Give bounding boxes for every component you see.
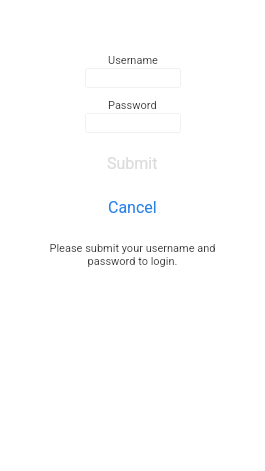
button[interactable]: Username input <box>85 68 181 88</box>
button[interactable]: Password input <box>85 113 181 133</box>
staticText: Password <box>108 99 157 112</box>
staticText: Username <box>108 54 158 67</box>
staticText: Cancel <box>108 198 157 217</box>
staticText: Please submit your username and password… <box>45 242 220 268</box>
button[interactable]: Cancel <box>98 195 167 220</box>
staticText: Submit <box>107 154 158 173</box>
button[interactable]: Submit <box>97 151 168 176</box>
